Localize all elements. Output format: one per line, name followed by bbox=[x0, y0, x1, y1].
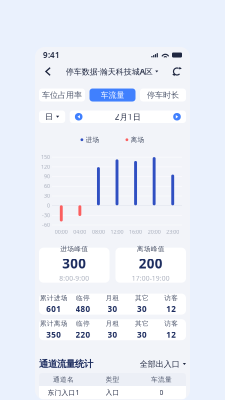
button[interactable]: Back bbox=[40, 63, 56, 79]
staticText: 入口 bbox=[105, 388, 119, 397]
staticText: 30 bbox=[44, 192, 50, 199]
staticText: 04:00 bbox=[73, 228, 86, 235]
staticText: 12:00 bbox=[110, 228, 123, 235]
staticText: 300 bbox=[62, 254, 86, 272]
staticText: 601 bbox=[46, 304, 61, 314]
staticText: 20:00 bbox=[148, 228, 161, 235]
staticText: 30 bbox=[107, 329, 117, 340]
button[interactable]: 日 bbox=[39, 110, 65, 123]
button[interactable]: 停车时长 bbox=[140, 88, 186, 101]
staticText: 其它 bbox=[135, 294, 149, 302]
staticText: 23:00 bbox=[166, 228, 179, 235]
staticText: 2月1日 bbox=[115, 111, 141, 122]
staticText: 车流量 bbox=[100, 90, 124, 100]
staticText: 200 bbox=[139, 254, 163, 272]
staticText: 车位占用率 bbox=[42, 90, 82, 100]
staticText: 120 bbox=[41, 163, 50, 170]
staticText: 16:00 bbox=[129, 228, 142, 235]
staticText: 车流量 bbox=[151, 375, 172, 384]
staticText: 00:00 bbox=[55, 228, 68, 235]
staticText: 60 bbox=[44, 182, 50, 190]
staticText: 30 bbox=[107, 304, 117, 314]
button[interactable]: 全部出入口 bbox=[140, 357, 186, 370]
staticText: 东门入口1 bbox=[47, 388, 79, 397]
staticText: 停车时长 bbox=[147, 90, 179, 100]
staticText: 220 bbox=[76, 329, 91, 340]
staticText: 0 bbox=[159, 388, 163, 397]
staticText: 累计进场 bbox=[40, 294, 68, 302]
staticText: 其它 bbox=[135, 319, 149, 328]
staticText: 月租 bbox=[105, 294, 119, 302]
button[interactable]: Previous day bbox=[73, 110, 85, 123]
staticText: 08:00 bbox=[92, 228, 105, 235]
staticText: 日 bbox=[45, 112, 53, 122]
staticText: 350 bbox=[46, 329, 61, 340]
button[interactable]: Next day bbox=[171, 110, 183, 123]
staticText: 0 bbox=[47, 202, 50, 209]
button[interactable]: Refresh bbox=[169, 63, 185, 79]
staticText: 类型 bbox=[105, 375, 119, 384]
staticText: 月租 bbox=[105, 319, 119, 328]
staticText: 90 bbox=[44, 173, 50, 180]
staticText: 8:00-9:00 bbox=[59, 274, 89, 283]
staticText: 30 bbox=[137, 329, 147, 340]
staticText: 临停 bbox=[76, 319, 90, 328]
button[interactable]: 车流量 bbox=[89, 88, 135, 101]
button[interactable]: 车位占用率 bbox=[39, 88, 85, 101]
button[interactable]: 停车数据·瀚天科技城A区 bbox=[62, 63, 162, 79]
staticText: 30 bbox=[137, 304, 147, 314]
staticText: 全部出入口 bbox=[140, 359, 180, 369]
staticText: -60 bbox=[42, 221, 50, 228]
staticText: 停车数据·瀚天科技城A区 bbox=[66, 66, 153, 77]
staticText: 离场峰值 bbox=[137, 245, 165, 253]
staticText: 12 bbox=[166, 329, 176, 340]
staticText: 进场 bbox=[85, 136, 99, 144]
staticText: -30 bbox=[42, 212, 50, 219]
staticText: 进场峰值 bbox=[60, 245, 88, 253]
staticText: 访客 bbox=[164, 319, 178, 328]
staticText: 访客 bbox=[164, 294, 178, 302]
staticText: 12 bbox=[166, 304, 176, 314]
staticText: 9:41 bbox=[43, 50, 60, 60]
staticText: 150 bbox=[41, 153, 50, 160]
staticText: 通道名 bbox=[53, 375, 74, 384]
staticText: 临停 bbox=[76, 294, 90, 302]
staticText: 480 bbox=[76, 304, 91, 314]
staticText: 通道流量统计 bbox=[39, 358, 93, 370]
staticText: 离场 bbox=[130, 136, 144, 144]
staticText: 累计离场 bbox=[40, 319, 68, 328]
staticText: 17:00-19:00 bbox=[132, 274, 170, 283]
